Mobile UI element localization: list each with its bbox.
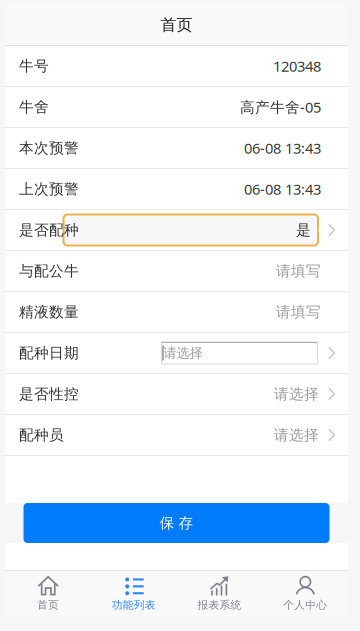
staticText: 是否性控 [19, 385, 79, 403]
staticText: 牛号 [19, 57, 49, 75]
staticText: 保 存 [159, 514, 193, 532]
staticText: 报表系统 [197, 598, 241, 611]
staticText: 请选择 [274, 426, 319, 444]
staticText: 请填写 [276, 262, 321, 280]
button[interactable]: 配种员 [5, 415, 348, 456]
staticText: 120348 [273, 56, 321, 76]
staticText: 是否配种 [19, 221, 79, 239]
staticText: 是 [296, 221, 311, 239]
button[interactable]: 是 [5, 210, 348, 251]
staticText: 功能列表 [112, 598, 156, 611]
button[interactable]: 保 存 [23, 503, 329, 543]
button[interactable]: 配种日期 [5, 333, 348, 374]
staticText: 06-08 13:43 [244, 179, 321, 199]
staticText: 首页 [37, 598, 59, 611]
staticText: 精液数量 [19, 303, 79, 321]
button[interactable]: 精液数量 [5, 292, 348, 333]
staticText: 与配公牛 [19, 262, 79, 280]
staticText: 请选择 [163, 345, 202, 361]
button[interactable]: 与配公牛 [5, 251, 348, 292]
staticText: 牛舍 [19, 98, 49, 116]
staticText: 高产牛舍-05 [240, 97, 321, 117]
button[interactable]: 首页 [5, 571, 91, 616]
staticText: 首页 [160, 15, 192, 35]
staticText: 上次预警 [19, 180, 79, 198]
button[interactable]: 报表系统 [176, 571, 262, 616]
staticText: 请选择 [274, 385, 319, 403]
button[interactable]: 是否性控 [5, 374, 348, 415]
staticText: 配种日期 [19, 344, 79, 362]
button[interactable]: 个人中心 [262, 571, 348, 616]
button[interactable]: 功能列表 [91, 571, 177, 616]
staticText: 个人中心 [283, 598, 327, 611]
staticText: 本次预警 [19, 139, 79, 157]
staticText: 06-08 13:43 [244, 138, 321, 158]
staticText: 配种员 [19, 426, 64, 444]
staticText: 请填写 [276, 303, 321, 321]
